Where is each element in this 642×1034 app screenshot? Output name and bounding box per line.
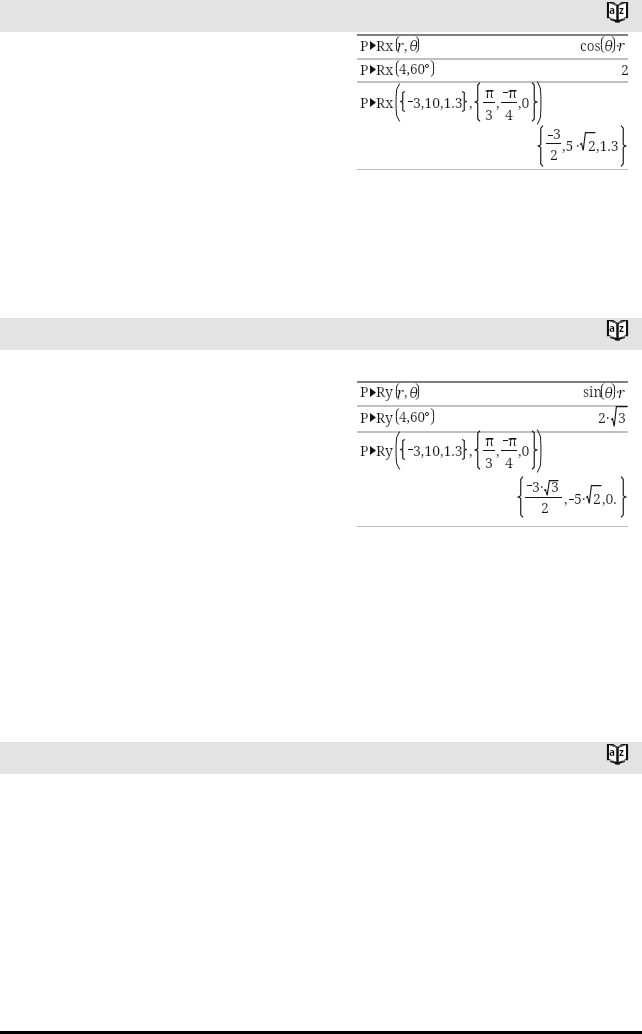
staticText: 3 xyxy=(485,453,493,472)
button[interactable]: Catalog xyxy=(606,319,629,341)
staticText: Ry xyxy=(376,441,393,460)
staticText: · xyxy=(582,489,586,508)
staticText: θ xyxy=(409,35,418,55)
staticText: π xyxy=(508,431,518,450)
staticText: Rx xyxy=(376,36,394,55)
staticText: z xyxy=(619,745,624,759)
staticText: 4,60 xyxy=(399,408,426,426)
staticText: , xyxy=(404,36,408,55)
staticText: sin xyxy=(583,383,603,401)
staticText: 3,10,1.3 xyxy=(413,441,463,460)
staticText: , xyxy=(469,441,473,460)
staticText: P xyxy=(360,60,369,79)
staticText: 4 xyxy=(505,453,513,472)
staticText: 3 xyxy=(618,408,626,427)
staticText: P xyxy=(360,36,369,55)
button[interactable]: Catalog xyxy=(606,743,629,765)
staticText: θ xyxy=(409,382,418,402)
staticText: a xyxy=(609,321,615,335)
staticText: 4 xyxy=(505,105,513,124)
staticText: P xyxy=(360,441,369,460)
staticText: z xyxy=(619,3,624,17)
staticText: cos xyxy=(580,37,601,55)
staticText: · xyxy=(540,477,544,496)
staticText: θ xyxy=(604,35,613,55)
staticText: Rx xyxy=(376,93,394,112)
staticText: , xyxy=(496,93,500,112)
staticText: 2 xyxy=(598,408,606,427)
button[interactable]: Catalog xyxy=(606,1,629,23)
staticText: P xyxy=(360,93,369,112)
staticText: · xyxy=(616,382,620,401)
staticText: ,0 xyxy=(518,93,530,112)
staticText: 3,10,1.3 xyxy=(413,93,463,112)
staticText: z xyxy=(619,321,624,335)
staticText: ,1.3 xyxy=(596,136,619,155)
staticText: π xyxy=(508,83,518,102)
staticText: · xyxy=(576,136,580,155)
staticText: P xyxy=(360,382,369,401)
staticText: 2 xyxy=(593,489,601,508)
staticText: Ry xyxy=(376,382,393,401)
staticText: π xyxy=(485,431,495,450)
staticText: , xyxy=(496,441,500,460)
staticText: 2 xyxy=(588,136,596,155)
staticText: ,0. xyxy=(602,489,617,508)
staticText: ,5 xyxy=(562,136,574,155)
staticText: · xyxy=(616,36,620,55)
staticText: 2 xyxy=(550,145,558,164)
staticText: 3 xyxy=(551,477,559,496)
staticText: r xyxy=(618,35,625,55)
staticText: r xyxy=(397,35,404,55)
staticText: 4,60 xyxy=(399,60,426,78)
staticText: 5 xyxy=(574,489,582,508)
staticText: r xyxy=(397,382,404,402)
staticText: Ry xyxy=(376,408,393,427)
staticText: a xyxy=(609,3,615,17)
staticText: P xyxy=(360,408,369,427)
staticText: r xyxy=(618,382,625,402)
staticText: · xyxy=(606,408,610,427)
staticText: 2 xyxy=(541,498,549,517)
staticText: π xyxy=(485,83,495,102)
staticText: ,0 xyxy=(518,441,530,460)
staticText: , xyxy=(469,93,473,112)
staticText: 3 xyxy=(532,477,540,496)
staticText: Rx xyxy=(376,60,394,79)
staticText: , xyxy=(404,382,408,401)
staticText: , xyxy=(564,489,568,508)
staticText: 3 xyxy=(485,105,493,124)
staticText: 3 xyxy=(553,124,561,143)
staticText: a xyxy=(609,745,615,759)
staticText: 2 xyxy=(621,60,629,79)
staticText: θ xyxy=(604,382,613,402)
